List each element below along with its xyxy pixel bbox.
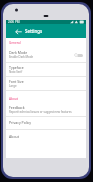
staticText: Report technical issues or suggest new f… bbox=[9, 110, 72, 114]
staticText: Enable Dark Mode bbox=[9, 55, 34, 59]
button[interactable]: Typeface bbox=[6, 62, 86, 76]
staticText: Feedback bbox=[9, 105, 25, 110]
staticText: About bbox=[9, 97, 18, 101]
staticText: Settings bbox=[25, 28, 43, 34]
staticText: Large bbox=[9, 84, 17, 88]
staticText: About bbox=[9, 134, 19, 139]
staticText: 2:06 PM bbox=[8, 20, 20, 24]
staticText: Dark Mode bbox=[9, 50, 28, 55]
staticText: Font Size bbox=[9, 79, 24, 84]
staticText: Noto Serif bbox=[9, 70, 23, 74]
staticText: Typeface bbox=[9, 65, 24, 70]
button[interactable]: Feedback bbox=[6, 102, 86, 116]
staticText: General bbox=[9, 41, 21, 45]
button[interactable]: Privacy Policy bbox=[6, 116, 86, 129]
button[interactable]: Back bbox=[12, 24, 25, 38]
button[interactable]: Dark Mode bbox=[6, 47, 86, 62]
staticText: Privacy Policy bbox=[9, 120, 32, 125]
button[interactable]: About bbox=[6, 129, 86, 143]
button[interactable]: Font Size bbox=[6, 76, 86, 90]
